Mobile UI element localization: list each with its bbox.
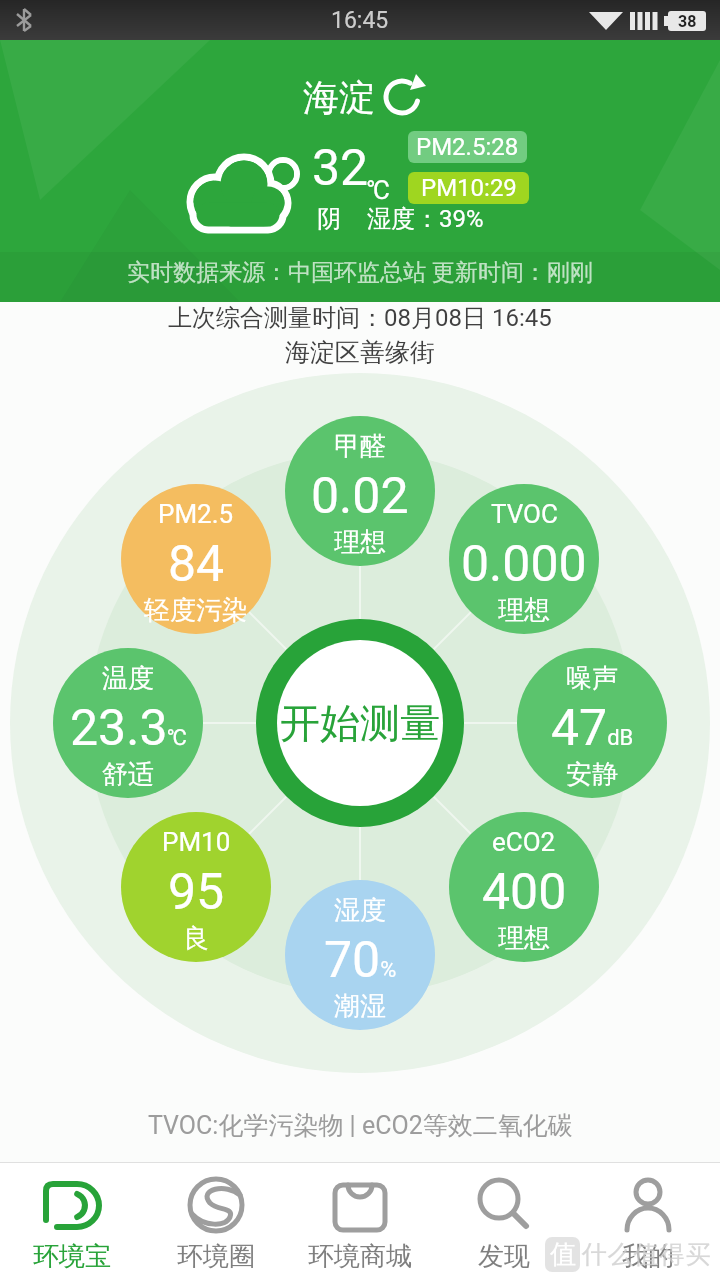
staticText: PM10:29 <box>421 174 517 202</box>
button[interactable]: 环境宝 <box>0 1163 144 1280</box>
staticText: 38 <box>678 12 697 31</box>
button[interactable] <box>121 812 271 962</box>
staticText: 32 <box>312 139 369 198</box>
staticText: 海淀区善缘街 <box>285 337 435 368</box>
staticText: 0.000 <box>461 535 587 594</box>
staticText: 阴 <box>317 204 341 234</box>
staticText: 潮湿 <box>334 990 386 1023</box>
button[interactable]: PM10:29 <box>408 172 529 204</box>
staticText: TVOC <box>491 499 558 529</box>
staticText: 良 <box>183 922 209 955</box>
staticText: 什么值得买 <box>581 1239 711 1270</box>
staticText: PM10 <box>162 827 231 857</box>
staticText: ℃ <box>367 175 390 205</box>
button[interactable] <box>285 880 435 1030</box>
button[interactable]: 发现 <box>432 1163 576 1280</box>
staticText: 400 <box>482 863 567 922</box>
staticText: PM2.5 <box>158 499 234 529</box>
staticText: 环境宝 <box>33 1240 111 1273</box>
button[interactable] <box>256 619 464 827</box>
staticText: 舒适 <box>102 758 154 791</box>
staticText: 值 <box>550 1238 576 1271</box>
staticText: 16:45 <box>331 7 389 34</box>
button[interactable] <box>285 416 435 566</box>
staticText: eCO2 <box>492 827 556 857</box>
staticText: 84 <box>168 535 225 594</box>
staticText: 0.02 <box>311 467 409 526</box>
staticText: 理想 <box>498 594 550 627</box>
staticText: 环境商城 <box>308 1240 412 1273</box>
button[interactable] <box>449 484 599 634</box>
button[interactable]: 环境圈 <box>144 1163 288 1280</box>
button[interactable] <box>121 484 271 634</box>
staticText: TVOC:化学污染物 | eCO2等效二氧化碳 <box>148 1110 573 1141</box>
button[interactable]: 我的 <box>576 1163 720 1280</box>
staticText: 安静 <box>566 758 618 791</box>
staticText: 47dB <box>551 699 634 758</box>
button[interactable]: 环境商城 <box>288 1163 432 1280</box>
button[interactable] <box>53 648 203 798</box>
staticText: 湿度：39% <box>367 204 484 234</box>
staticText: 理想 <box>334 526 386 559</box>
button[interactable] <box>517 648 667 798</box>
staticText: 湿度 <box>334 894 386 927</box>
staticText: 开始测量 <box>280 698 440 748</box>
staticText: 23.3℃ <box>70 699 187 758</box>
button[interactable] <box>449 812 599 962</box>
staticText: 噪声 <box>566 662 618 695</box>
staticText: 环境圈 <box>177 1240 255 1273</box>
staticText: 轻度污染 <box>144 594 248 627</box>
staticText: 甲醛 <box>334 430 386 463</box>
staticText: 温度 <box>102 662 154 695</box>
staticText: 上次综合测量时间：08月08日 16:45 <box>168 303 552 333</box>
staticText: 理想 <box>498 922 550 955</box>
staticText: 我的 <box>622 1240 674 1273</box>
staticText: 95 <box>168 863 225 922</box>
staticText: 70% <box>324 931 397 990</box>
button[interactable]: PM2.5:28 <box>408 131 527 163</box>
staticText: 发现 <box>478 1240 530 1273</box>
staticText: 实时数据来源：中国环监总站 更新时间：刚刚 <box>127 258 593 287</box>
staticText: PM2.5:28 <box>416 133 519 161</box>
staticText: 海淀 <box>303 75 375 120</box>
